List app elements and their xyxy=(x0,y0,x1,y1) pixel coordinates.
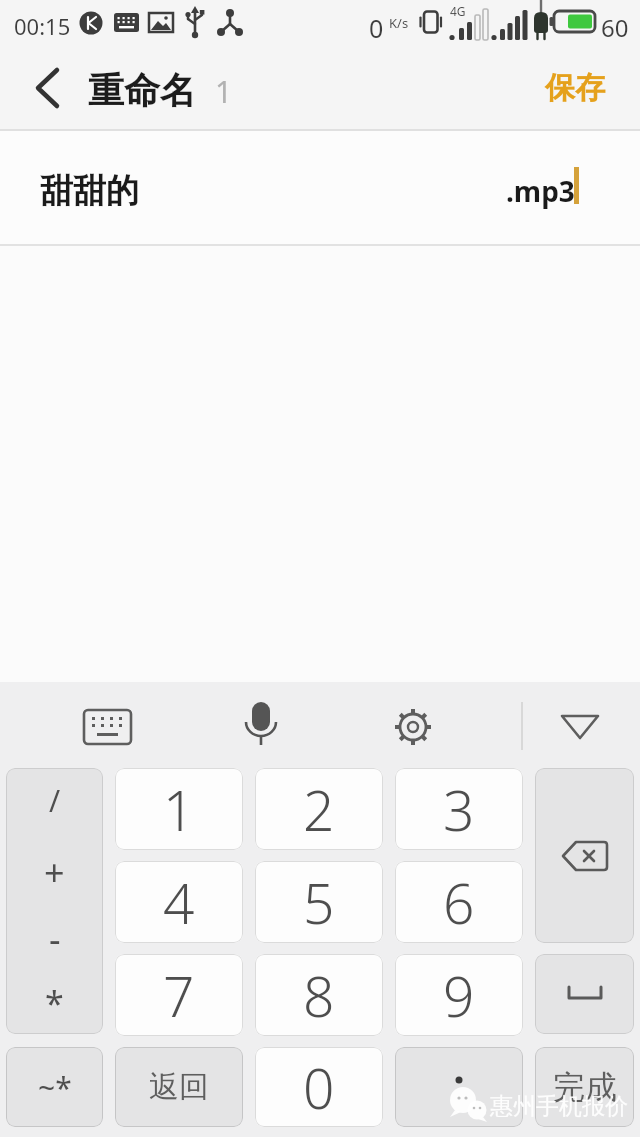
button[interactable] xyxy=(230,696,294,756)
staticText: 1 xyxy=(163,772,195,847)
staticText: K/s xyxy=(389,14,409,32)
staticText: 5 xyxy=(303,865,335,940)
staticText: * xyxy=(45,980,64,1020)
button[interactable]: 5 xyxy=(255,861,383,943)
staticText: 0 xyxy=(369,11,384,45)
button[interactable] xyxy=(382,696,446,756)
button[interactable]: 4 xyxy=(115,861,243,943)
staticText: 4G xyxy=(450,3,466,19)
staticText: 9 xyxy=(443,958,475,1033)
button[interactable]: 返回 xyxy=(115,1047,243,1127)
button[interactable] xyxy=(72,696,142,756)
staticText: 8 xyxy=(303,958,335,1033)
button[interactable] xyxy=(395,1047,523,1127)
button[interactable] xyxy=(548,696,614,756)
staticText: 4 xyxy=(163,865,195,940)
button[interactable]: / xyxy=(6,768,103,1034)
button[interactable]: 完成 xyxy=(535,1047,634,1127)
staticText: 返回 xyxy=(149,1068,209,1106)
button[interactable]: ~* xyxy=(6,1047,103,1127)
staticText: 3 xyxy=(443,772,475,847)
staticText: 60 xyxy=(601,11,629,44)
button[interactable] xyxy=(535,954,634,1034)
staticText: 2 xyxy=(303,772,335,847)
staticText: 1 xyxy=(215,71,233,112)
button[interactable] xyxy=(535,768,634,943)
button[interactable]: 0 xyxy=(255,1047,383,1127)
staticText: 00:15 xyxy=(14,11,71,41)
button[interactable]: 7 xyxy=(115,954,243,1036)
button[interactable]: 9 xyxy=(395,954,523,1036)
staticText: ~* xyxy=(38,1067,72,1108)
staticText: 保存 xyxy=(545,69,605,107)
staticText: 0 xyxy=(303,1050,335,1125)
button[interactable]: 1 xyxy=(115,768,243,850)
button[interactable]: 2 xyxy=(255,768,383,850)
staticText: 完成 xyxy=(553,1067,617,1107)
staticText: 7 xyxy=(163,958,195,1033)
staticText: 6 xyxy=(443,865,475,940)
button[interactable]: 8 xyxy=(255,954,383,1036)
staticText: 甜甜的 xyxy=(40,170,139,212)
button[interactable] xyxy=(28,62,76,114)
staticText: / xyxy=(49,780,61,820)
button[interactable]: 3 xyxy=(395,768,523,850)
button[interactable]: 保存 xyxy=(530,58,620,118)
staticText: - xyxy=(49,914,61,954)
staticText: 惠州手机报价 xyxy=(490,1092,628,1121)
button[interactable]: 6 xyxy=(395,861,523,943)
staticText: + xyxy=(44,848,65,888)
staticText: .mp3 xyxy=(506,172,575,210)
staticText: 重命名 xyxy=(88,68,196,113)
